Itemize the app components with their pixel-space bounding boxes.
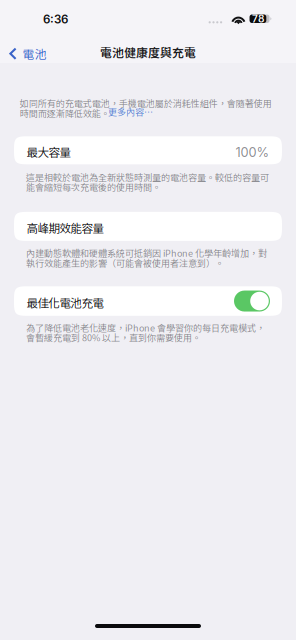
- staticText: 為了降低電池老化速度，iPhone 會學習你的每日充電模式，會暫緩充電到 80%…: [26, 321, 265, 344]
- staticText: 100%: [235, 145, 269, 160]
- staticText: 如同所有的充電式電池，手機電池屬於消耗性組件，會隨著使用時間而逐漸降低效能。: [20, 97, 272, 120]
- button[interactable]: 電池: [0, 0, 54, 27]
- staticText: 更多內容⋯: [108, 105, 153, 118]
- staticText: 內建動態軟體和硬體系統可抵銷因 iPhone 化學年齡增加，對執行效能產生的影響…: [26, 246, 267, 269]
- button[interactable]: 更多內容⋯: [108, 106, 158, 116]
- staticText: 最大容量: [27, 143, 71, 160]
- staticText: 78: [252, 13, 264, 25]
- button[interactable]: 最大容量: [14, 136, 282, 164]
- staticText: 電池健康度與充電: [100, 44, 196, 61]
- button[interactable]: 最佳化電池充電: [14, 286, 282, 316]
- staticText: 這是相較於電池為全新狀態時測量的電池容量。較低的容量可能會縮短每次充電後的使用時…: [26, 170, 269, 193]
- staticText: 電池: [22, 45, 46, 62]
- staticText: 最佳化電池充電: [27, 294, 104, 311]
- staticText: 6:36: [43, 12, 68, 26]
- button[interactable]: 高峰期效能容量: [14, 212, 282, 241]
- staticText: 高峰期效能容量: [27, 219, 104, 236]
